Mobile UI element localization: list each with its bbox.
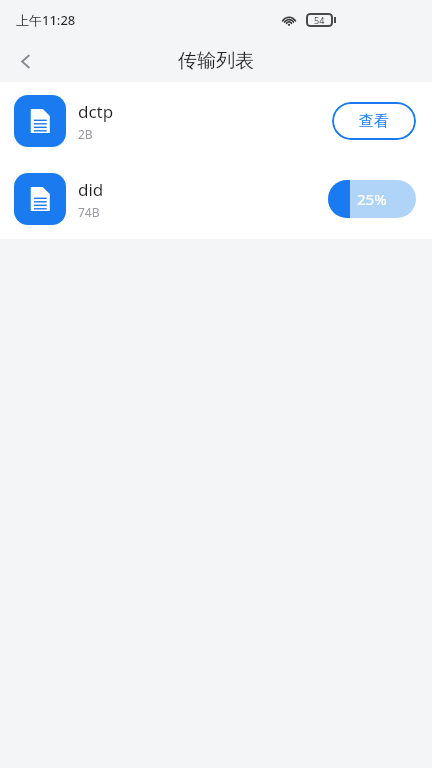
button[interactable]: 查看 <box>332 102 416 140</box>
staticText: 传输列表 <box>178 49 254 73</box>
staticText: 54 <box>314 14 325 26</box>
staticText: dctp <box>78 100 114 123</box>
staticText: 25% <box>357 189 387 209</box>
staticText: 查看 <box>359 112 389 131</box>
button[interactable]: did <box>0 160 432 238</box>
staticText: did <box>78 178 104 201</box>
staticText: 74B <box>78 204 100 220</box>
staticText: 2B <box>78 126 93 142</box>
button[interactable]: 25% <box>328 180 416 218</box>
button[interactable]: Back <box>0 40 50 82</box>
button[interactable]: dctp <box>0 82 432 160</box>
staticText: 上午11:28 <box>16 11 76 29</box>
